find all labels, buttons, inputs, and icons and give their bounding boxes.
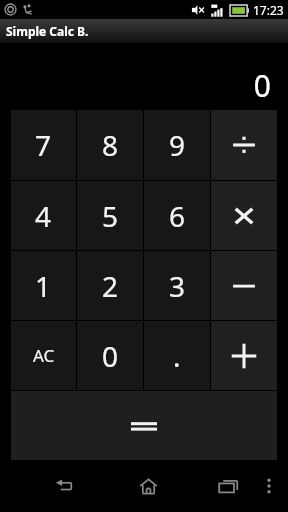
- button[interactable]: Divide: [211, 110, 277, 180]
- button[interactable]: 7: [11, 110, 76, 180]
- button[interactable]: Back: [44, 464, 88, 508]
- staticText: 9: [169, 126, 186, 164]
- button[interactable]: 9: [144, 110, 210, 180]
- button[interactable]: 2: [77, 251, 143, 320]
- button[interactable]: 1: [11, 251, 76, 320]
- staticText: .: [173, 337, 181, 375]
- button[interactable]: Multiply: [211, 181, 277, 250]
- button[interactable]: 3: [144, 251, 210, 320]
- staticText: 0: [102, 337, 119, 375]
- staticText: 5: [102, 197, 119, 235]
- staticText: 0: [253, 65, 271, 106]
- staticText: 1: [35, 267, 52, 305]
- staticText: 17:23: [253, 2, 284, 18]
- staticText: 4: [35, 197, 52, 235]
- staticText: 7: [35, 126, 52, 164]
- button[interactable]: Add: [211, 321, 277, 390]
- button[interactable]: 6: [144, 181, 210, 250]
- button[interactable]: 5: [77, 181, 143, 250]
- staticText: 3: [169, 267, 186, 305]
- button[interactable]: More options: [254, 471, 284, 501]
- staticText: Simple Calc B.: [6, 23, 89, 39]
- button[interactable]: Equals: [11, 391, 277, 460]
- staticText: 8: [102, 126, 119, 164]
- staticText: AC: [33, 344, 55, 367]
- button[interactable]: 0: [77, 321, 143, 390]
- staticText: 6: [169, 197, 186, 235]
- button[interactable]: Subtract: [211, 251, 277, 320]
- staticText: 2: [102, 267, 119, 305]
- button[interactable]: .: [144, 321, 210, 390]
- button[interactable]: Recent apps: [206, 464, 250, 508]
- button[interactable]: AC: [11, 321, 76, 390]
- button[interactable]: Home: [126, 464, 170, 508]
- button[interactable]: 8: [77, 110, 143, 180]
- button[interactable]: 4: [11, 181, 76, 250]
